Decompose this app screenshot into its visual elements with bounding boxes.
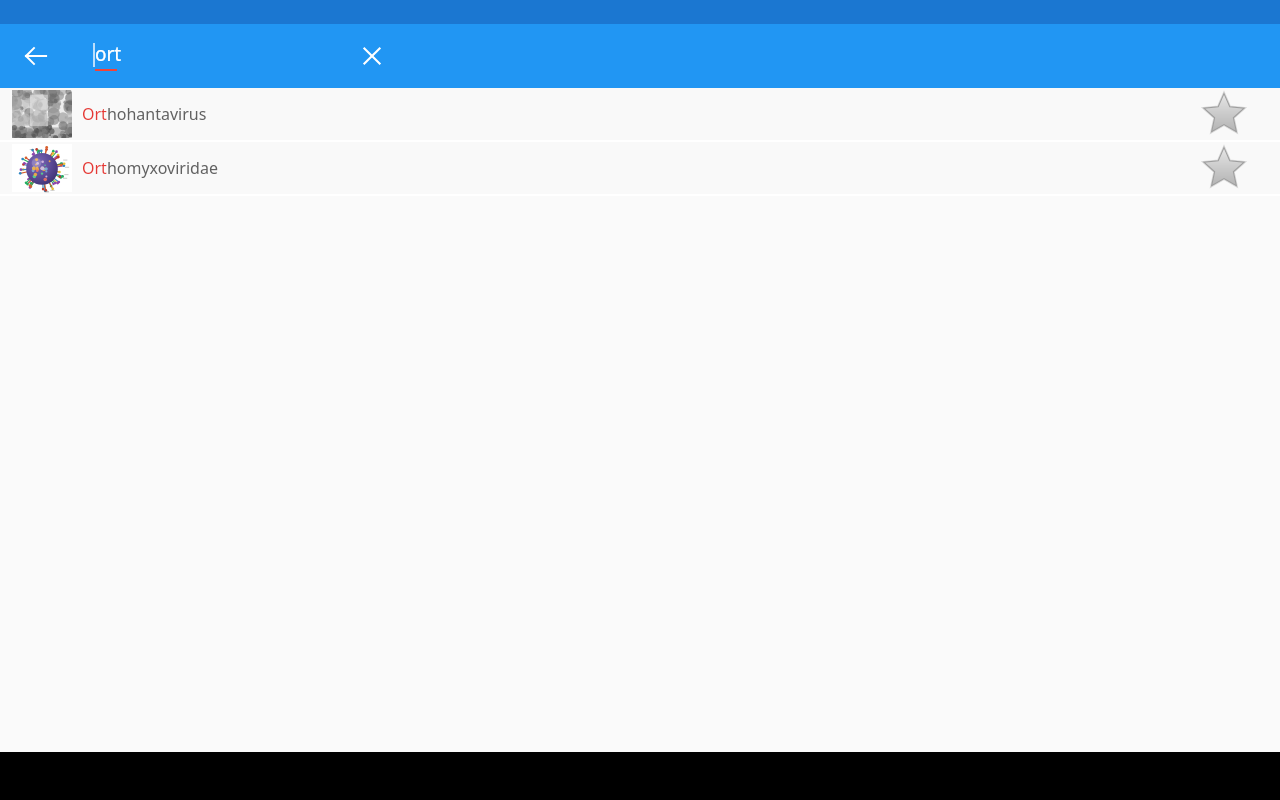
- button[interactable]: Clear query: [348, 32, 396, 80]
- button[interactable]: Orthohantavirus: [0, 88, 1280, 140]
- button[interactable]: Orthomyxoviridae: [0, 142, 1280, 194]
- button[interactable]: Add to favourites: [1176, 142, 1272, 194]
- button[interactable]: Add to favourites: [1176, 88, 1272, 140]
- button[interactable]: ort: [88, 24, 348, 88]
- staticText: Orthohantavirus: [82, 103, 1176, 125]
- staticText: ort: [95, 41, 122, 67]
- staticText: Orthomyxoviridae: [82, 157, 1176, 179]
- button[interactable]: Navigate up: [12, 32, 60, 80]
